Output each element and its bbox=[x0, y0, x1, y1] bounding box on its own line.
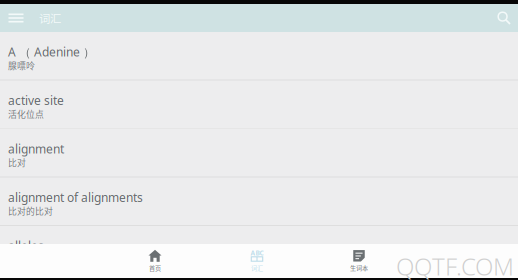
staticText: 活化位点 bbox=[8, 107, 44, 120]
button[interactable]: alignment of alignments bbox=[0, 177, 518, 225]
button[interactable]: ABC bbox=[206, 245, 308, 277]
staticText: 腺嘌呤 bbox=[8, 59, 35, 72]
button[interactable]: active site bbox=[0, 80, 518, 128]
button[interactable]: Search bbox=[490, 4, 518, 32]
staticText: QQTF.COM bbox=[396, 250, 514, 280]
button[interactable]: alleles bbox=[0, 226, 518, 273]
button[interactable]: 首页 bbox=[104, 245, 206, 277]
staticText: alignment of alignments bbox=[8, 189, 143, 205]
staticText: 词汇 bbox=[39, 10, 61, 26]
staticText: 比对的比对 bbox=[8, 204, 53, 217]
button[interactable]: 生词本 bbox=[308, 245, 410, 277]
button[interactable]: Menu bbox=[1, 4, 31, 32]
staticText: active site bbox=[8, 92, 64, 108]
button[interactable]: alignment bbox=[0, 129, 518, 176]
staticText: 比对 bbox=[8, 156, 26, 169]
staticText: ABC bbox=[250, 248, 263, 257]
staticText: 首页 bbox=[149, 263, 161, 272]
staticText: alleles bbox=[8, 238, 44, 254]
staticText: 词汇 bbox=[251, 263, 263, 272]
staticText: 生词本 bbox=[350, 263, 368, 272]
staticText: alignment bbox=[8, 141, 64, 157]
staticText: A （ Adenine ） bbox=[8, 44, 95, 60]
button[interactable]: A （ Adenine ） bbox=[0, 32, 518, 79]
